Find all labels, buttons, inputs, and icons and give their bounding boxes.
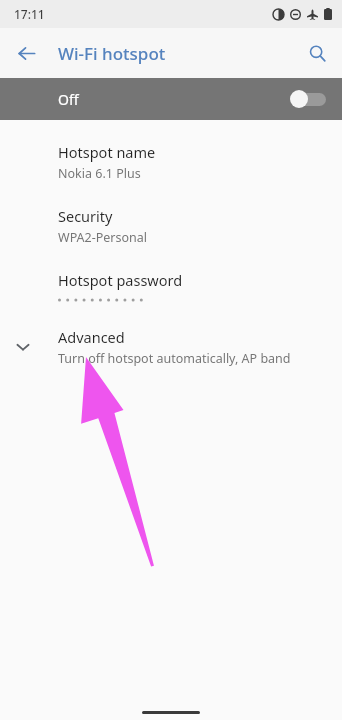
staticText: Nokia 6.1 Plus [58,165,141,182]
button[interactable]: Back [6,33,46,73]
staticText: 17:11 [14,6,45,22]
staticText: WPA2-Personal [58,229,148,246]
button[interactable]: Advanced [0,315,342,379]
staticText: Wi-Fi hotspot [58,42,166,65]
staticText: Turn off hotspot automatically, AP band [58,350,291,367]
button[interactable]: Hotspot password [0,258,342,315]
staticText: Hotspot name [58,142,156,162]
staticText: Advanced [58,327,125,347]
button[interactable]: Security [0,194,342,258]
button[interactable]: Hotspot name [0,130,342,194]
staticText: Security [58,206,113,226]
staticText: Off [58,90,79,109]
button[interactable]: Off [0,78,342,120]
button[interactable]: Search [297,33,337,73]
staticText: Hotspot password [58,270,183,290]
